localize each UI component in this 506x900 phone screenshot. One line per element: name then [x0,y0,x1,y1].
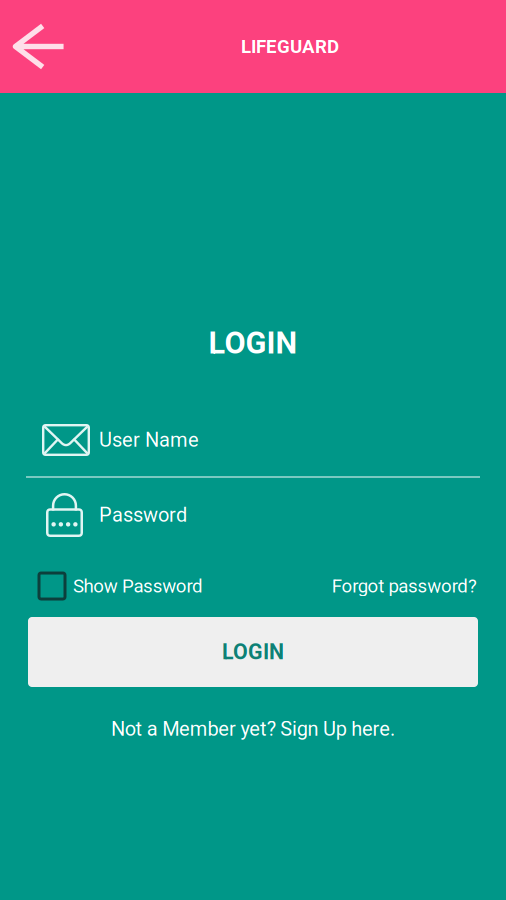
button[interactable]: Password [46,493,480,537]
button[interactable]: Forgot password? [332,569,477,603]
button[interactable]: User Name [42,419,480,461]
button[interactable]: LOGIN [28,617,478,687]
staticText: LIFEGUARD [241,36,339,57]
staticText: Show Password [73,575,203,597]
staticText: Password [99,503,187,527]
button[interactable]: Not a Member yet? Sign Up here. [0,712,506,746]
staticText: Forgot password? [332,575,477,597]
button[interactable]: Show Password [39,569,203,603]
staticText: User Name [99,428,199,452]
staticText: Not a Member yet? Sign Up here. [111,717,395,741]
staticText: LOGIN [208,325,297,361]
staticText: LOGIN [222,639,284,664]
button[interactable]: Back [0,0,86,93]
